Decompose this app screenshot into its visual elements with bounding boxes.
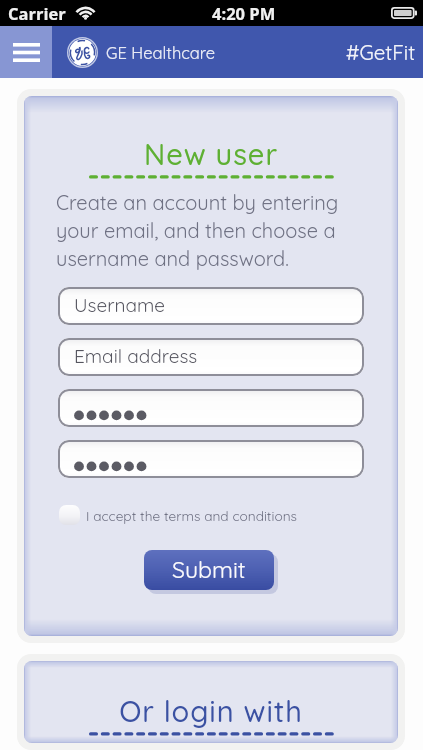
staticText: Create an account by entering <box>56 190 339 215</box>
staticText: Or login with <box>119 693 303 729</box>
staticText: your email, and then choose a <box>56 218 336 243</box>
button[interactable] <box>58 389 364 427</box>
button[interactable]: I accept the terms and conditions <box>59 505 364 525</box>
other: GE logo <box>67 37 98 68</box>
button[interactable]: Open navigation menu <box>0 26 52 78</box>
staticText: Username <box>74 293 166 317</box>
button[interactable]: Username <box>58 287 364 325</box>
other: Wi-Fi signal <box>74 6 97 20</box>
staticText: GE Healthcare <box>106 42 216 63</box>
staticText: New user <box>144 136 278 172</box>
staticText: I accept the terms and conditions <box>86 507 298 524</box>
staticText: 4:20 PM <box>212 2 276 24</box>
button[interactable]: Email address <box>58 338 364 376</box>
staticText: Carrier <box>8 2 66 24</box>
other: Battery full <box>391 7 418 19</box>
staticText: Email address <box>74 344 198 368</box>
button[interactable]: Submit <box>144 550 274 590</box>
staticText: Submit <box>172 555 246 584</box>
button[interactable] <box>58 440 364 478</box>
staticText: #GetFit <box>346 39 416 65</box>
staticText: username and password. <box>56 246 289 271</box>
